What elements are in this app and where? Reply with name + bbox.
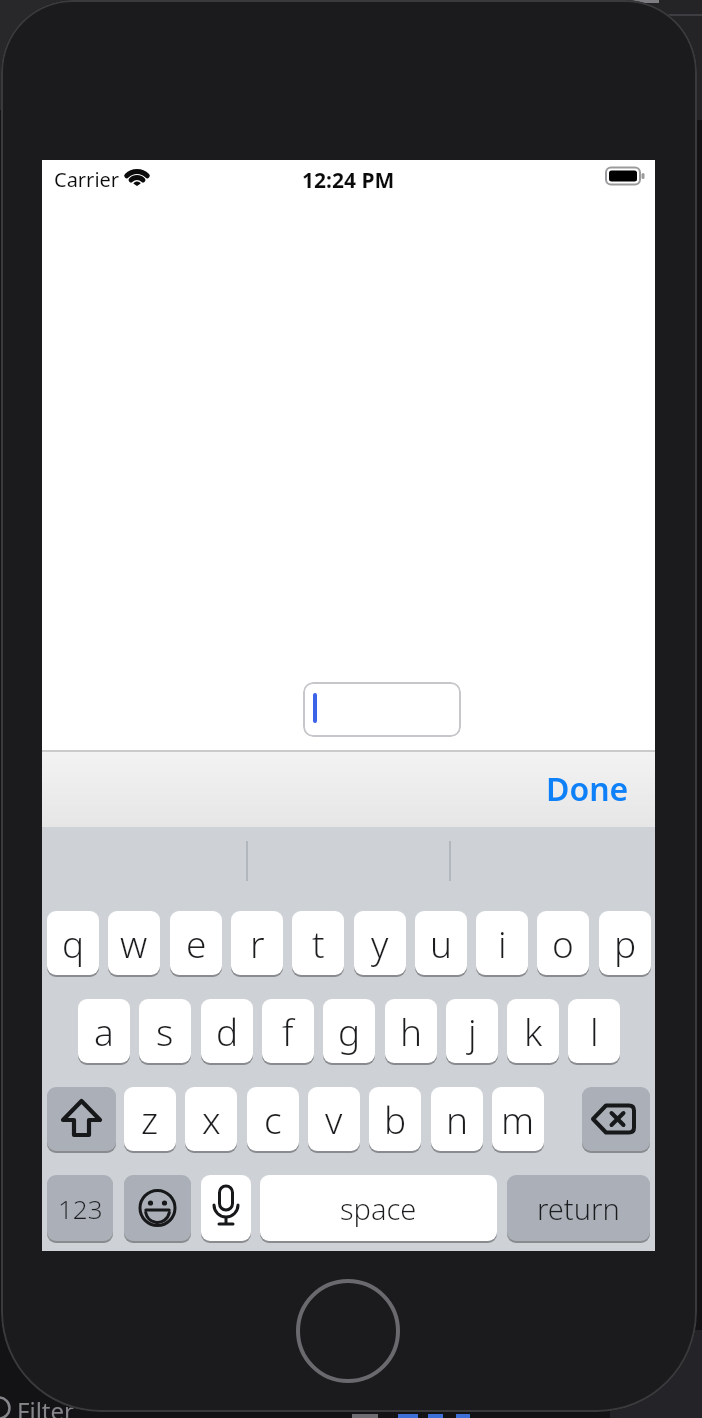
button[interactable] (124, 1175, 191, 1241)
button[interactable]: 123 (47, 1175, 113, 1241)
staticText: w (120, 918, 148, 968)
button[interactable]: return (507, 1175, 650, 1241)
staticText: f (282, 1006, 294, 1056)
button[interactable]: s (139, 999, 191, 1063)
staticText: t (312, 918, 325, 968)
staticText: i (498, 918, 507, 968)
staticText: j (468, 1006, 477, 1056)
staticText: return (537, 1189, 620, 1228)
staticText: y (371, 918, 389, 968)
button[interactable]: x (185, 1087, 237, 1151)
staticText: g (338, 1006, 361, 1056)
staticText: space (340, 1189, 417, 1228)
staticText: 12:24 PM (302, 166, 395, 195)
button[interactable]: g (323, 999, 375, 1063)
staticText: a (94, 1006, 114, 1056)
button[interactable]: y (354, 911, 406, 975)
staticText: r (250, 918, 265, 968)
staticText: c (264, 1094, 282, 1144)
button[interactable]: a (78, 999, 130, 1063)
staticText: n (446, 1094, 469, 1144)
button[interactable]: n (431, 1087, 483, 1151)
staticText: q (62, 918, 85, 968)
button[interactable]: l (568, 999, 620, 1063)
staticText: z (141, 1094, 159, 1144)
button[interactable]: space (260, 1175, 497, 1241)
button[interactable]: b (369, 1087, 421, 1151)
staticText: h (400, 1006, 423, 1056)
staticText: Done (546, 767, 629, 811)
staticText: l (590, 1006, 599, 1056)
staticText: e (186, 918, 207, 968)
staticText: b (384, 1094, 407, 1144)
staticText: k (524, 1006, 543, 1056)
button[interactable]: v (308, 1087, 360, 1151)
button[interactable]: t (292, 911, 344, 975)
staticText: 123 (58, 1191, 103, 1226)
staticText: x (202, 1094, 221, 1144)
button[interactable]: d (201, 999, 253, 1063)
button[interactable] (201, 1175, 251, 1241)
staticText: v (325, 1094, 343, 1144)
button[interactable]: u (415, 911, 467, 975)
button[interactable]: i (476, 911, 528, 975)
staticText: o (552, 918, 574, 968)
staticText: d (216, 1006, 239, 1056)
button[interactable]: Done (546, 767, 629, 811)
button[interactable]: m (492, 1087, 544, 1151)
staticText: s (156, 1006, 174, 1056)
button[interactable]: h (385, 999, 437, 1063)
staticText: Filter (17, 1394, 74, 1418)
button[interactable] (582, 1087, 650, 1151)
button[interactable]: j (446, 999, 498, 1063)
button[interactable]: e (170, 911, 222, 975)
button[interactable]: r (231, 911, 283, 975)
button[interactable]: z (124, 1087, 176, 1151)
button[interactable]: f (262, 999, 314, 1063)
button[interactable]: p (599, 911, 651, 975)
button[interactable]: o (537, 911, 589, 975)
button[interactable]: c (247, 1087, 299, 1151)
button[interactable] (47, 1087, 116, 1151)
button[interactable]: w (108, 911, 160, 975)
button[interactable] (303, 682, 461, 737)
button[interactable]: k (507, 999, 559, 1063)
staticText: Carrier (54, 166, 120, 193)
staticText: m (501, 1094, 535, 1144)
button[interactable]: q (47, 911, 99, 975)
staticText: p (614, 918, 637, 968)
staticText: u (430, 918, 453, 968)
